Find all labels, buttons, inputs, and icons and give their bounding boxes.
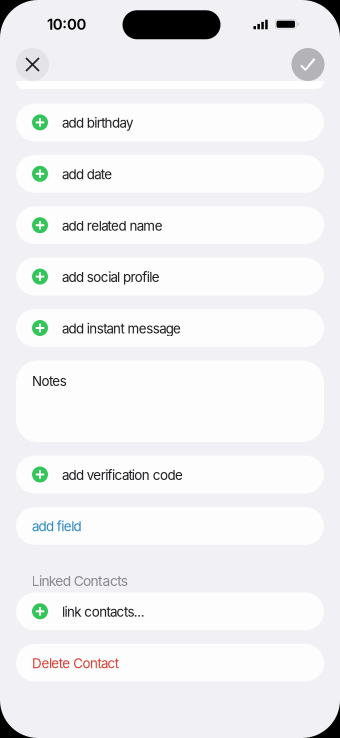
staticText: 10:00 <box>47 15 87 33</box>
staticText: link contacts... <box>62 604 145 620</box>
staticText: Notes <box>32 373 67 389</box>
button[interactable]: add related name <box>16 206 324 244</box>
staticText: add social profile <box>62 269 160 285</box>
button[interactable]: add field <box>16 507 324 545</box>
staticText: add instant message <box>62 320 181 337</box>
button[interactable]: Notes <box>16 360 324 442</box>
button[interactable]: add social profile <box>16 258 324 295</box>
button[interactable]: link contacts... <box>16 592 324 630</box>
staticText: add date <box>62 166 112 182</box>
button[interactable]: Done <box>291 48 324 81</box>
button[interactable]: add verification code <box>16 456 324 493</box>
button[interactable]: add birthday <box>16 103 324 141</box>
staticText: Linked Contacts <box>31 573 128 589</box>
button[interactable]: add date <box>16 155 324 193</box>
staticText: add birthday <box>62 115 133 131</box>
button[interactable]: Close <box>16 48 49 81</box>
staticText: add related name <box>62 218 163 234</box>
staticText: add field <box>32 518 82 534</box>
button[interactable]: Delete Contact <box>16 644 324 682</box>
button[interactable]: add instant message <box>16 309 324 347</box>
staticText: Delete Contact <box>32 655 119 671</box>
staticText: add verification code <box>62 467 183 483</box>
